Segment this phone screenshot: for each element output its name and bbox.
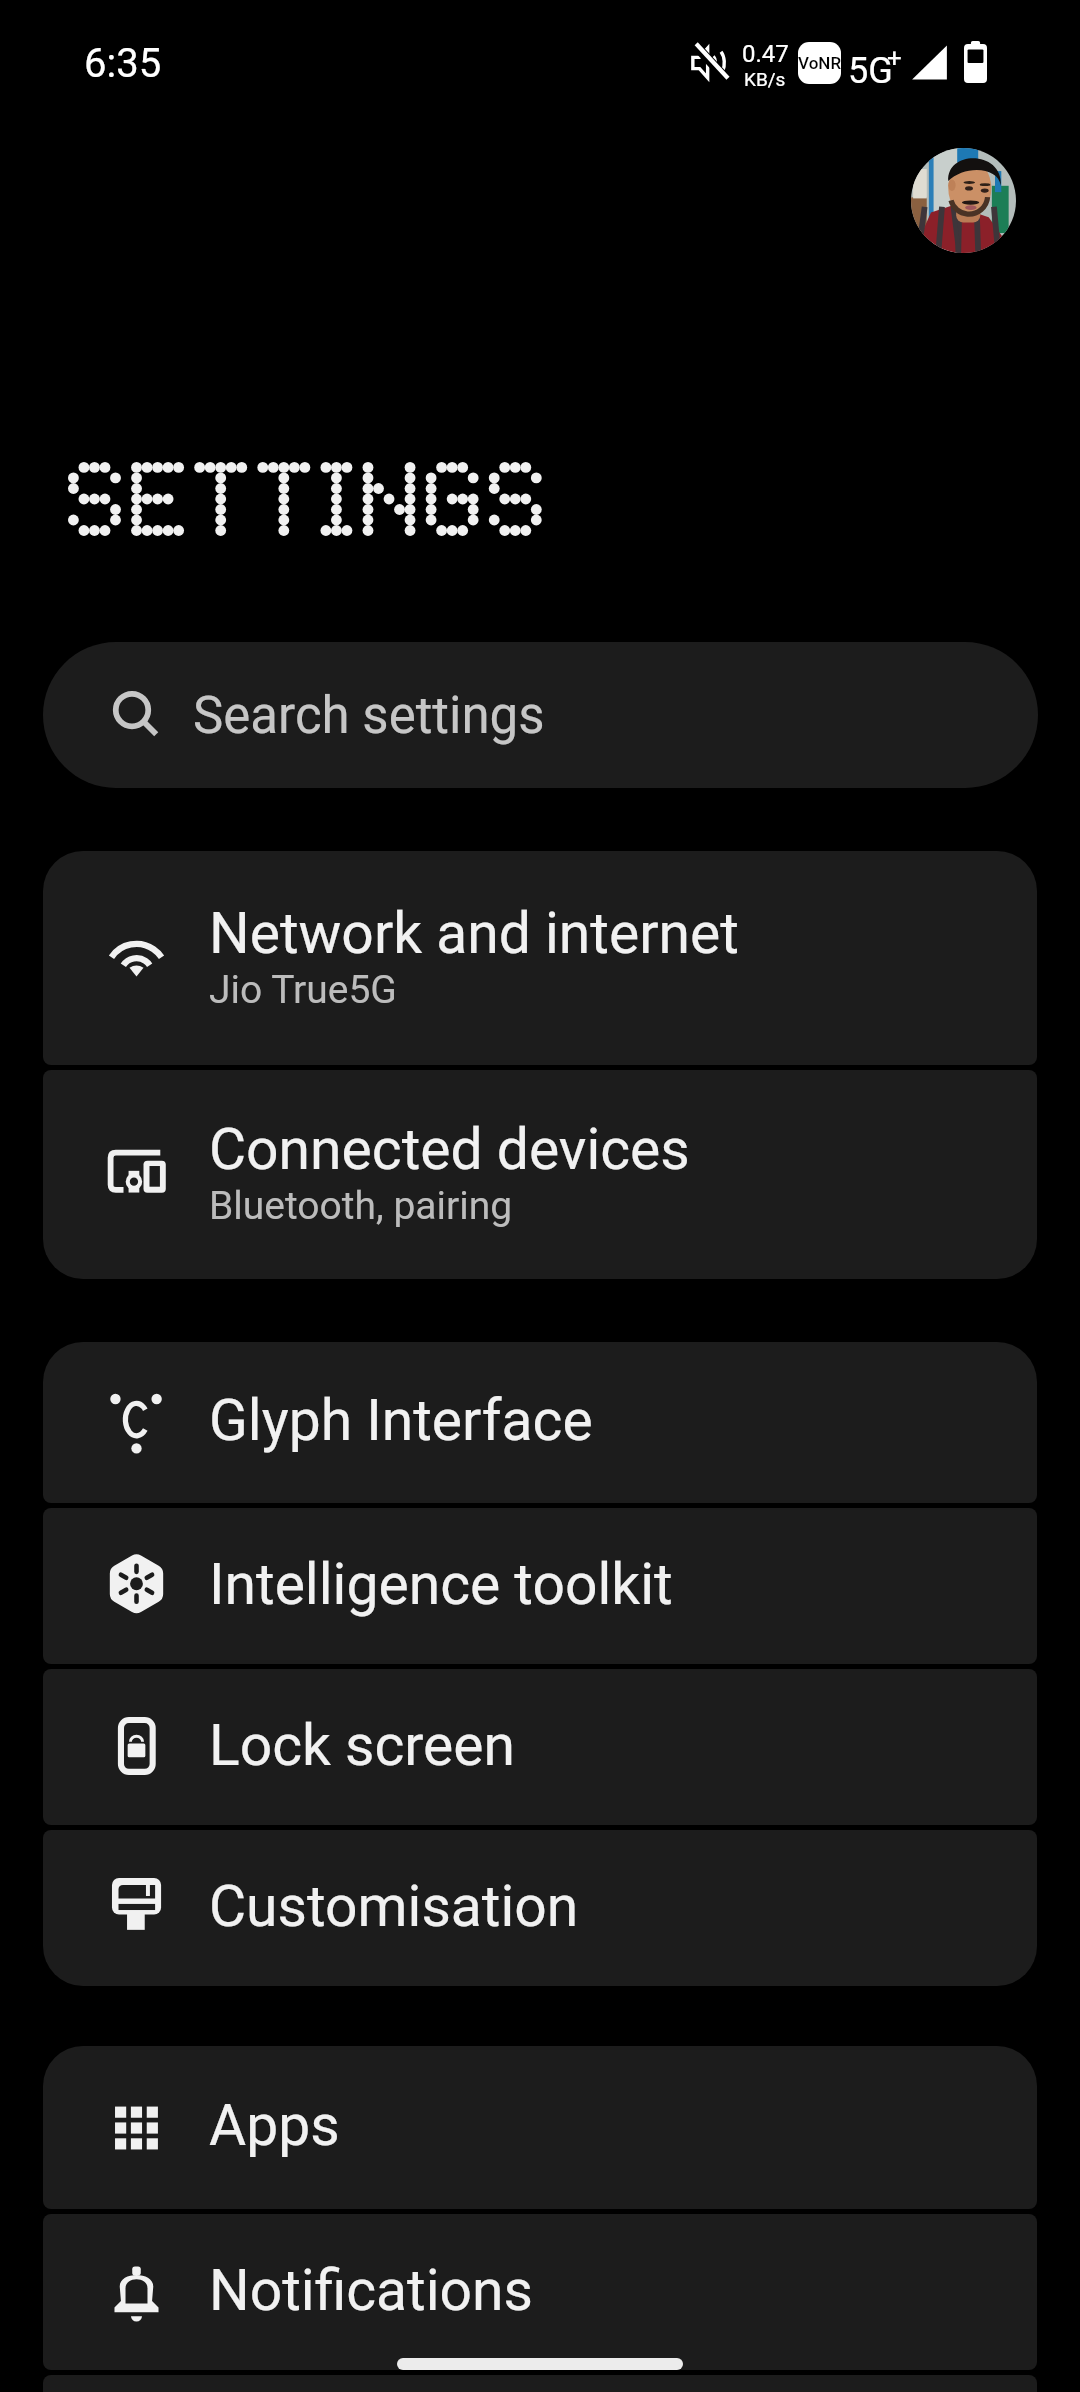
staticText: VoNR xyxy=(798,53,841,73)
staticText: 0.47 xyxy=(742,40,789,68)
staticText: Network and internet xyxy=(209,900,739,967)
button[interactable]: Intelligence toolkit xyxy=(43,1508,1037,1664)
button[interactable]: Lock screen xyxy=(43,1669,1037,1825)
staticText: 6:35 xyxy=(84,40,162,87)
staticText: 5G xyxy=(848,50,893,92)
button[interactable]: Notifications xyxy=(43,2214,1037,2370)
staticText: Glyph Interface xyxy=(209,1387,593,1454)
button[interactable]: Apps xyxy=(43,2046,1037,2209)
staticText: Bluetooth, pairing xyxy=(209,1183,513,1229)
button[interactable]: Glyph Interface xyxy=(43,1342,1037,1503)
button[interactable]: Account xyxy=(911,148,1016,253)
staticText: Apps xyxy=(209,2092,340,2159)
button[interactable]: Customisation xyxy=(43,1830,1037,1986)
button[interactable]: Search settings xyxy=(43,642,1038,788)
staticText: KB/s xyxy=(744,68,786,90)
staticText: + xyxy=(887,43,902,73)
staticText: Jio True5G xyxy=(209,967,397,1013)
staticText: Notifications xyxy=(209,2257,534,2324)
staticText: Customisation xyxy=(209,1873,579,1940)
button[interactable]: Network and internet xyxy=(43,851,1037,1065)
staticText: Search settings xyxy=(193,686,545,746)
button[interactable]: Connected devices xyxy=(43,1070,1037,1279)
staticText: Connected devices xyxy=(209,1116,690,1183)
staticText: Intelligence toolkit xyxy=(209,1551,673,1618)
staticText: Lock screen xyxy=(209,1712,516,1779)
